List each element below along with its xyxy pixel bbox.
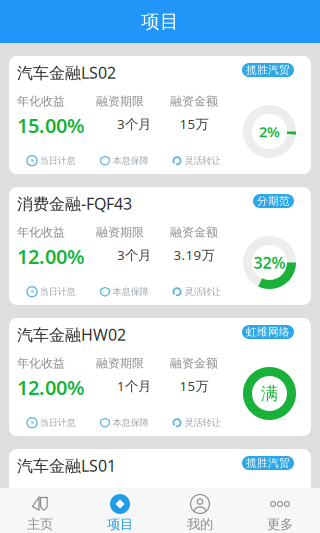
staticText: 融资金额 bbox=[170, 94, 218, 109]
staticText: 分期范 bbox=[257, 194, 290, 207]
staticText: 32% bbox=[253, 252, 285, 273]
staticText: 15.00% bbox=[17, 112, 85, 139]
button[interactable]: 我的 bbox=[160, 488, 240, 533]
staticText: 当日计息 bbox=[39, 417, 75, 428]
staticText: 融资金额 bbox=[170, 487, 218, 502]
staticText: 当日计息 bbox=[39, 286, 75, 297]
button[interactable]: 汽车金融LS02 bbox=[9, 56, 311, 174]
staticText: 3个月 bbox=[117, 246, 151, 264]
staticText: 2% bbox=[259, 122, 280, 141]
staticText: 融资金额 bbox=[170, 356, 218, 371]
staticText: 融资期限 bbox=[96, 487, 144, 502]
staticText: 融资期限 bbox=[96, 225, 144, 240]
staticText: 15万 bbox=[179, 377, 208, 395]
staticText: 本息保障 bbox=[112, 417, 148, 428]
button[interactable]: 主页 bbox=[0, 488, 80, 533]
staticText: 消费金融-FQF43 bbox=[17, 193, 132, 214]
staticText: 15万 bbox=[179, 115, 208, 133]
staticText: 13.00% bbox=[17, 505, 85, 532]
staticText: 灵活转让 bbox=[184, 286, 220, 297]
button[interactable]: 汽车金融HW02 bbox=[9, 318, 311, 436]
staticText: 本息保障 bbox=[112, 286, 148, 297]
staticText: 55% bbox=[253, 514, 285, 533]
staticText: 揽胜汽贸 bbox=[246, 456, 290, 469]
staticText: 20万 bbox=[179, 508, 208, 526]
staticText: 本息保障 bbox=[112, 155, 148, 166]
staticText: 主页 bbox=[27, 516, 53, 532]
staticText: 12.00% bbox=[17, 374, 85, 401]
staticText: 3个月 bbox=[117, 115, 151, 133]
staticText: 6个月 bbox=[117, 508, 151, 526]
button[interactable]: 更多 bbox=[240, 488, 320, 533]
staticText: 灵活转让 bbox=[184, 155, 220, 166]
staticText: 虹维网络 bbox=[246, 325, 290, 338]
staticText: 融资期限 bbox=[96, 356, 144, 371]
staticText: 项目 bbox=[141, 10, 179, 33]
staticText: 满 bbox=[261, 383, 278, 404]
staticText: 年化收益 bbox=[17, 225, 65, 240]
staticText: 年化收益 bbox=[17, 356, 65, 371]
button[interactable]: 项目 bbox=[80, 488, 160, 533]
staticText: 12.00% bbox=[17, 243, 85, 270]
button[interactable]: 消费金融-FQF43 bbox=[9, 187, 311, 305]
staticText: 3.19万 bbox=[173, 246, 214, 264]
staticText: 当日计息 bbox=[39, 155, 75, 166]
staticText: 我的 bbox=[187, 516, 213, 532]
staticText: 项目 bbox=[107, 516, 133, 532]
staticText: 年化收益 bbox=[17, 94, 65, 109]
staticText: 年化收益 bbox=[17, 487, 65, 502]
staticText: 融资金额 bbox=[170, 225, 218, 240]
staticText: 1个月 bbox=[117, 377, 151, 395]
staticText: 更多 bbox=[267, 516, 293, 532]
staticText: 灵活转让 bbox=[184, 417, 220, 428]
staticText: 融资期限 bbox=[96, 94, 144, 109]
staticText: 汽车金融HW02 bbox=[17, 324, 126, 345]
staticText: 揽胜汽贸 bbox=[246, 63, 290, 76]
button[interactable]: 汽车金融LS01 bbox=[9, 449, 311, 533]
staticText: 汽车金融LS02 bbox=[17, 62, 116, 83]
staticText: 汽车金融LS01 bbox=[17, 455, 116, 476]
